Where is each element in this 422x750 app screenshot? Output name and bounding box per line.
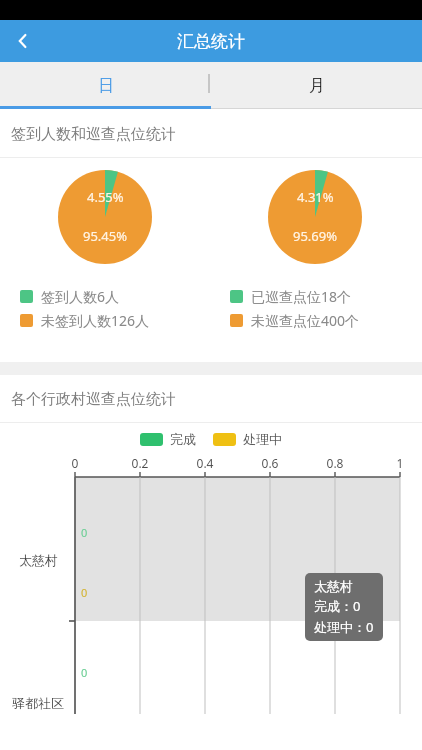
staticText: 驿都社区 <box>12 695 64 711</box>
staticText: 0.2 <box>128 455 152 471</box>
button[interactable]: 日 <box>0 62 211 109</box>
staticText: 0 <box>81 585 88 600</box>
staticText: 完成 <box>170 431 196 447</box>
staticText: 日 <box>98 76 114 96</box>
staticText: 处理中 <box>243 431 282 447</box>
staticText: 签到人数和巡查点位统计 <box>11 125 176 144</box>
staticText: 95.69% <box>293 227 338 245</box>
staticText: 处理中：0 <box>314 618 374 636</box>
staticText: 太慈村 <box>19 552 58 568</box>
staticText: 0.8 <box>323 455 347 471</box>
staticText: 4.55% <box>87 188 124 206</box>
staticText: 0 <box>81 665 88 680</box>
staticText: 未签到人数126人 <box>41 311 150 330</box>
staticText: 未巡查点位400个 <box>251 311 360 330</box>
staticText: 月 <box>309 76 325 96</box>
staticText: 签到人数6人 <box>41 287 120 306</box>
button[interactable]: Back <box>0 20 46 62</box>
staticText: 0 <box>63 455 87 471</box>
staticText: 各个行政村巡查点位统计 <box>11 390 176 409</box>
button[interactable]: 月 <box>211 62 422 109</box>
staticText: 汇总统计 <box>177 31 245 52</box>
staticText: 已巡查点位18个 <box>251 287 352 306</box>
staticText: 太慈村 <box>314 578 353 594</box>
staticText: 95.45% <box>83 227 128 245</box>
staticText: 0.4 <box>193 455 217 471</box>
staticText: 0.6 <box>258 455 282 471</box>
staticText: 完成：0 <box>314 597 361 615</box>
staticText: 0 <box>81 525 88 540</box>
staticText: 4.31% <box>297 188 334 206</box>
staticText: 1 <box>388 455 412 471</box>
